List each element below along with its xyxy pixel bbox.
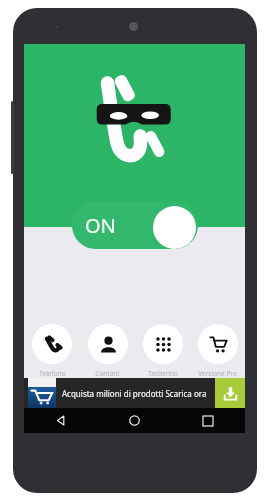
- staticText: Telefono: [39, 369, 66, 378]
- staticText: ON: [85, 212, 116, 239]
- button[interactable]: Scarica: [215, 378, 245, 408]
- staticText: Versione Pro: [198, 369, 237, 378]
- button[interactable]: Back: [24, 408, 97, 433]
- button[interactable]: ON: [72, 202, 198, 249]
- button[interactable]: Home: [97, 408, 171, 433]
- staticText: Tastierino: [148, 369, 178, 378]
- button[interactable]: Recenti: [171, 408, 245, 433]
- staticText: Acquista milioni di prodotti Scarica ora: [62, 388, 215, 399]
- staticText: Contatti: [95, 369, 120, 378]
- button[interactable]: Versione Pro: [190, 324, 245, 378]
- button[interactable]: Acquista milioni di prodotti Scarica ora: [24, 378, 245, 408]
- button[interactable]: Telefono: [24, 324, 80, 378]
- button[interactable]: Contatti: [80, 324, 135, 378]
- button[interactable]: Tastierino: [135, 324, 190, 378]
